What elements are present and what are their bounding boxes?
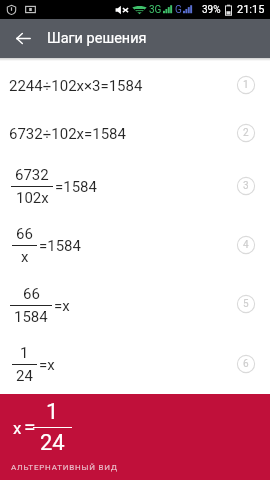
staticText: 24 (40, 430, 65, 456)
staticText: 24 (16, 367, 33, 385)
button[interactable]: Back (4, 19, 43, 58)
staticText: 1 (20, 344, 29, 362)
staticText: 39% (202, 4, 221, 16)
staticText: =1584 (55, 178, 97, 196)
staticText: 6 (243, 358, 249, 370)
staticText: 1584 (14, 308, 48, 326)
staticText: = (24, 415, 36, 440)
button[interactable]: 66 (0, 215, 270, 276)
staticText: 66 (16, 225, 33, 243)
staticText: 102x (16, 189, 49, 207)
button[interactable]: x (0, 394, 270, 480)
staticText: 3 (243, 180, 249, 192)
staticText: 21:15 (237, 3, 265, 16)
button[interactable]: Step 1 (235, 74, 257, 96)
staticText: x (13, 418, 22, 438)
staticText: 5 (243, 298, 249, 310)
staticText: G (175, 4, 182, 16)
staticText: =x (39, 356, 55, 374)
staticText: =x (54, 297, 70, 315)
staticText: 1 (46, 399, 59, 425)
staticText: 2244÷102x×3=1584 (9, 77, 143, 95)
staticText: x (21, 248, 29, 266)
button[interactable]: Step 6 (235, 353, 257, 375)
staticText: АЛЬТЕРНАТИВНЫЙ ВИД (11, 463, 118, 472)
staticText: 6732 (15, 166, 49, 184)
staticText: 2 (243, 127, 249, 139)
button[interactable]: 6732 (0, 158, 270, 215)
button[interactable]: Step 2 (235, 122, 257, 144)
staticText: Шаги решения (47, 30, 147, 47)
button[interactable]: 1 (0, 337, 270, 392)
button[interactable]: 2244÷102x×3=1584 (0, 62, 270, 109)
staticText: 1 (243, 79, 249, 91)
staticText: 3G (149, 4, 162, 16)
staticText: =1584 (39, 237, 81, 255)
staticText: 4 (243, 239, 249, 251)
button[interactable]: 6732÷102x=1584 (0, 109, 270, 159)
button[interactable]: Step 5 (235, 293, 257, 315)
button[interactable]: 66 (0, 275, 270, 335)
staticText: 66 (23, 285, 40, 303)
button[interactable]: Step 3 (235, 175, 257, 197)
staticText: 6732÷102x=1584 (9, 125, 126, 143)
button[interactable]: Step 4 (235, 234, 257, 256)
